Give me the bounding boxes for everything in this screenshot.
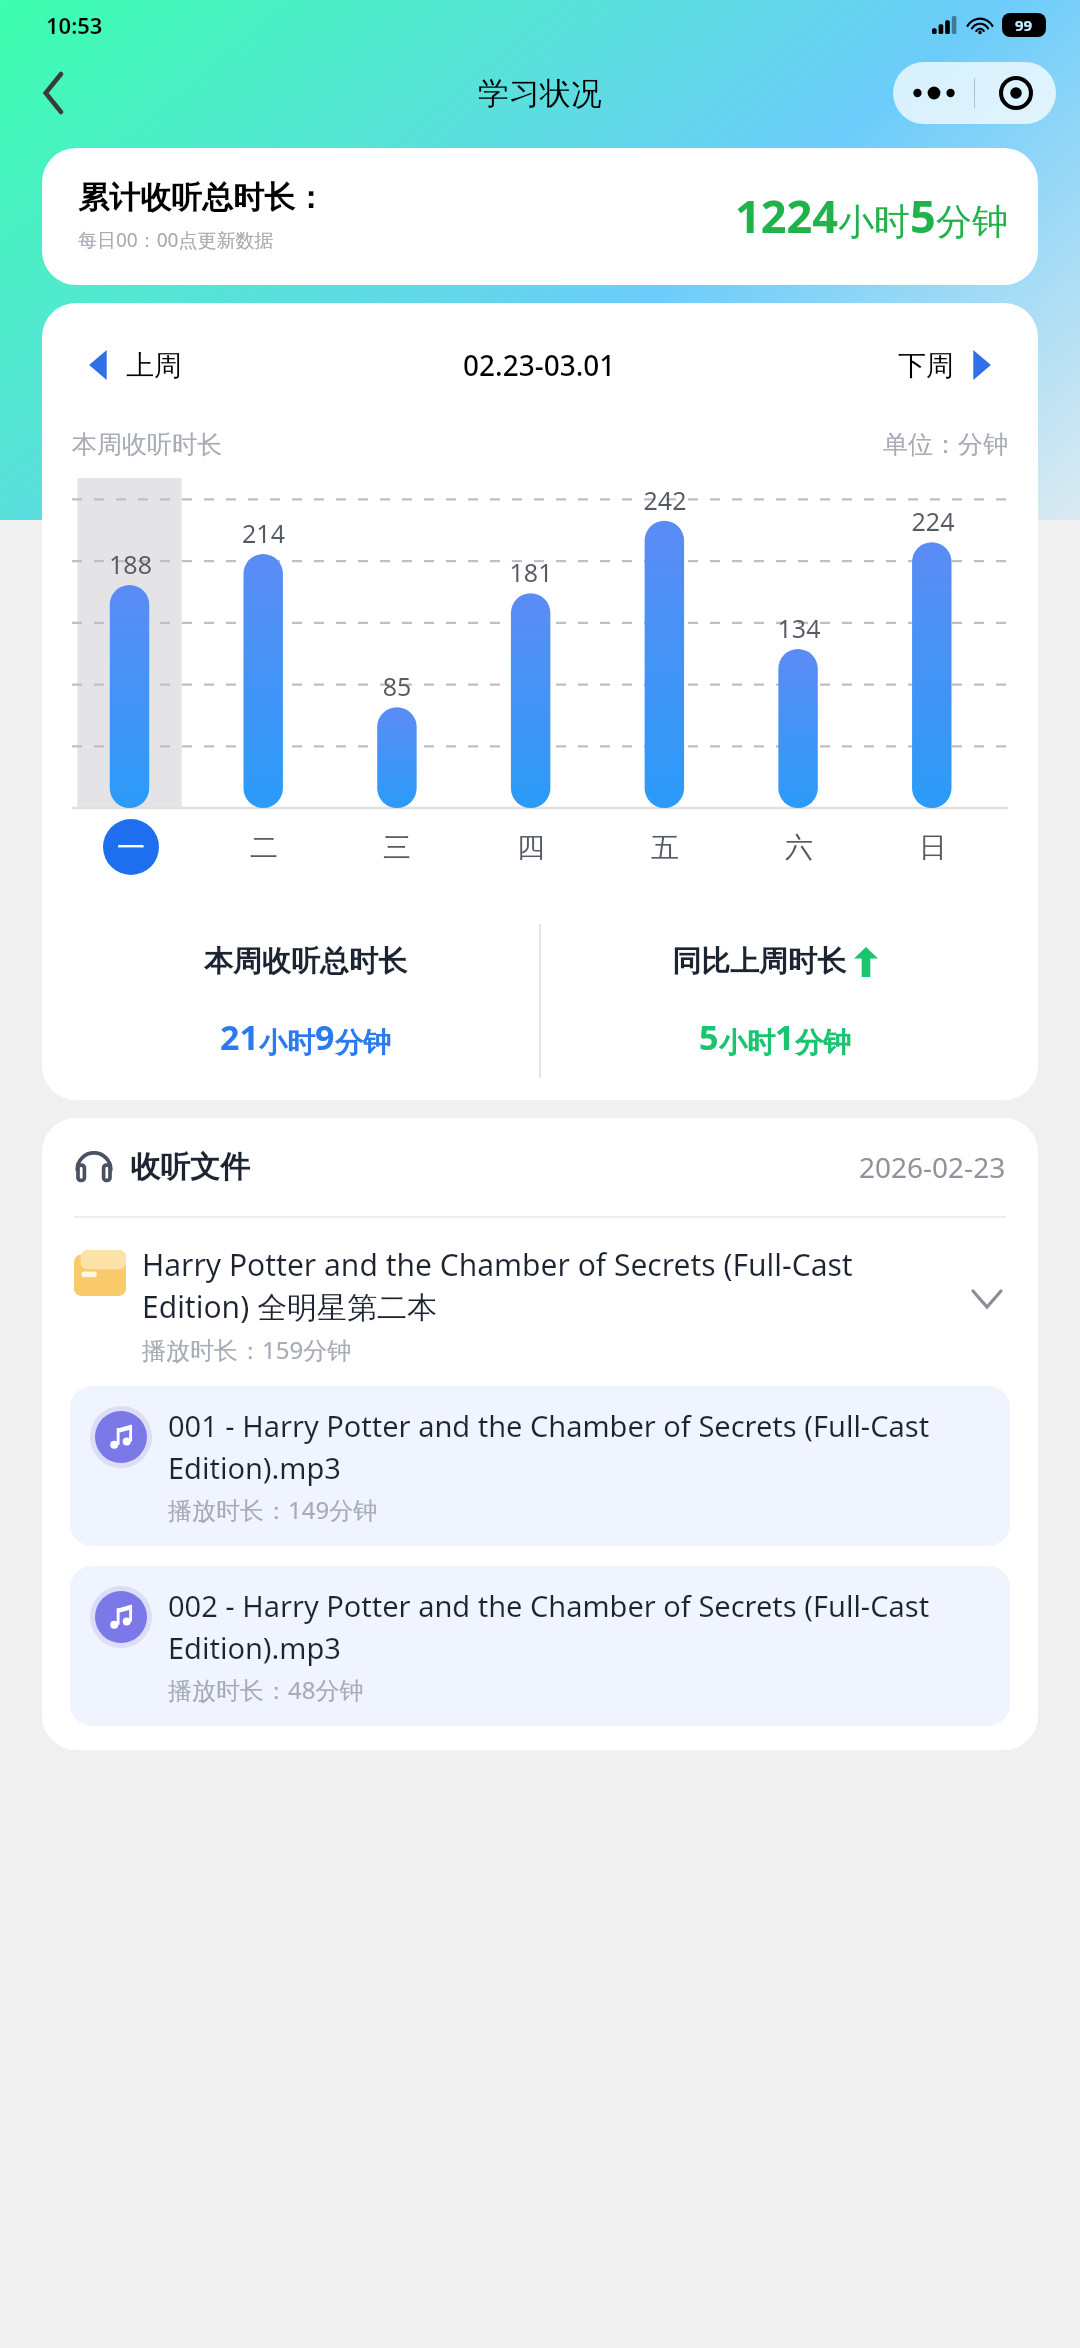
staticText: 1: [775, 1014, 795, 1060]
staticText: 001 - Harry Potter and the Chamber of Se…: [168, 1406, 990, 1487]
button[interactable]: 001 - Harry Potter and the Chamber of Se…: [70, 1386, 1010, 1546]
staticText: 小时: [719, 1025, 775, 1060]
staticText: 单位：分钟: [883, 429, 1008, 460]
staticText: 002 - Harry Potter and the Chamber of Se…: [168, 1586, 990, 1667]
staticText: 播放时长：159分钟: [142, 1333, 352, 1366]
staticText: 9: [315, 1014, 335, 1060]
button[interactable]: 三: [338, 808, 472, 886]
button[interactable]: More options: [893, 62, 1056, 124]
button[interactable]: 六: [740, 808, 874, 886]
staticText: 分钟: [936, 199, 1008, 244]
button[interactable]: 二: [205, 808, 338, 886]
button[interactable]: 累计收听总时长：: [42, 148, 1038, 285]
staticText: 5: [910, 185, 936, 246]
staticText: 小时: [838, 199, 910, 244]
staticText: 三: [383, 830, 411, 865]
staticText: 分钟: [795, 1025, 851, 1060]
staticText: 2026-02-23: [859, 1148, 1006, 1186]
staticText: 21: [220, 1014, 259, 1060]
button[interactable]: 下周: [898, 348, 954, 383]
staticText: 181: [464, 555, 598, 589]
button[interactable]: 五: [606, 808, 740, 886]
staticText: 5: [699, 1014, 719, 1060]
staticText: 一: [117, 830, 145, 865]
staticText: 小时: [259, 1025, 315, 1060]
staticText: 分钟: [335, 1025, 391, 1060]
button[interactable]: 四: [472, 808, 606, 886]
staticText: 224: [866, 504, 1000, 538]
button[interactable]: Back: [26, 65, 82, 121]
staticText: 85: [330, 669, 464, 703]
staticText: 六: [785, 830, 813, 865]
button[interactable]: 一: [72, 808, 205, 886]
staticText: 本周收听时长: [72, 429, 222, 460]
staticText: 五: [651, 830, 679, 865]
button[interactable]: Harry Potter and the Chamber of Secrets …: [42, 1218, 1038, 1386]
staticText: 二: [250, 830, 278, 865]
staticText: 本周收听总时长: [204, 943, 407, 980]
button[interactable]: 002 - Harry Potter and the Chamber of Se…: [70, 1566, 1010, 1726]
staticText: 1224: [735, 185, 838, 246]
button[interactable]: Next week: [954, 338, 1008, 392]
staticText: 99: [1015, 15, 1033, 35]
staticText: 累计收听总时长：: [78, 178, 326, 217]
staticText: 每日00：00点更新数据: [78, 227, 274, 253]
staticText: 02.23-03.01: [463, 346, 616, 384]
staticText: 四: [517, 830, 545, 865]
staticText: 播放时长：149分钟: [168, 1493, 378, 1526]
button[interactable]: Previous week: [72, 338, 126, 392]
staticText: 134: [732, 611, 866, 645]
staticText: 日: [919, 830, 947, 865]
button[interactable]: 上周: [126, 348, 182, 383]
staticText: 收听文件: [130, 1148, 250, 1186]
staticText: 10:53: [46, 10, 103, 40]
staticText: 242: [598, 483, 732, 517]
staticText: Harry Potter and the Chamber of Secrets …: [142, 1244, 962, 1327]
button[interactable]: 日: [874, 808, 1008, 886]
staticText: 214: [197, 516, 330, 550]
staticText: 同比上周时长: [672, 943, 846, 980]
staticText: 学习状况: [478, 74, 602, 113]
staticText: 播放时长：48分钟: [168, 1673, 364, 1706]
staticText: 188: [64, 547, 197, 581]
